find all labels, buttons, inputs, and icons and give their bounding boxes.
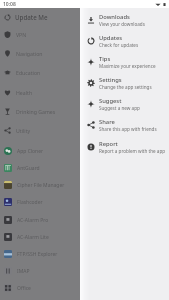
button[interactable]: Utility — [0, 122, 80, 139]
staticText: Share this app with friends — [99, 126, 157, 132]
button[interactable]: Health — [0, 84, 80, 101]
staticText: Update Me — [15, 13, 48, 21]
staticText: Tips — [99, 55, 111, 63]
button[interactable]: AC-Alarm Lite — [0, 229, 80, 245]
button[interactable]: Education — [0, 64, 80, 81]
staticText: Utility — [16, 127, 31, 134]
staticText: Downloads — [99, 13, 130, 21]
staticText: Drinking Games — [16, 108, 56, 115]
staticText: View your downloads — [99, 21, 145, 27]
staticText: Suggest — [99, 97, 122, 105]
button[interactable]: Downloads — [0, 9, 169, 30]
button[interactable]: App Cloner — [0, 143, 80, 159]
staticText: AC-Alarm Lite — [17, 234, 49, 241]
staticText: Health — [16, 89, 33, 96]
button[interactable]: Tips — [0, 51, 169, 72]
button[interactable]: IMAP — [0, 263, 80, 279]
staticText: Cipher File Manager — [17, 182, 65, 189]
staticText: Change the app settings — [99, 84, 152, 90]
staticText: Report a problem with the app — [99, 148, 166, 154]
button[interactable]: AntGuard — [0, 160, 80, 176]
button[interactable]: FTP/SSH Explorer — [0, 246, 80, 262]
staticText: Office — [17, 285, 31, 292]
staticText: Education — [16, 69, 41, 76]
staticText: AntGuard — [17, 165, 40, 172]
staticText: Suggest a new app — [99, 105, 140, 111]
button[interactable]: Flashcoder — [0, 194, 80, 210]
button[interactable]: Drinking Games — [0, 103, 80, 120]
staticText: Maximize your experience — [99, 63, 156, 69]
staticText: FTP/SSH Explorer — [17, 251, 58, 258]
staticText: AC-Alarm Pro — [17, 217, 49, 224]
staticText: Flashcoder — [17, 199, 43, 206]
staticText: 10:08 — [3, 1, 16, 8]
button[interactable]: Cipher File Manager — [0, 177, 80, 193]
button[interactable]: Update Me — [0, 9, 80, 25]
staticText: IMAP — [17, 268, 30, 275]
staticText: Check for updates — [99, 42, 139, 48]
button[interactable]: Report — [0, 136, 169, 157]
staticText: Navigation — [16, 50, 43, 57]
staticText: VPN — [16, 31, 27, 38]
staticText: App Cloner — [17, 148, 44, 155]
button[interactable]: Settings — [0, 72, 169, 93]
button[interactable]: AC-Alarm Pro — [0, 212, 80, 228]
staticText: Updates — [99, 34, 123, 42]
staticText: Share — [99, 118, 115, 126]
button[interactable]: Office — [0, 280, 80, 296]
button[interactable]: VPN — [0, 26, 80, 43]
button[interactable]: Navigation — [0, 45, 80, 62]
staticText: Settings — [99, 76, 122, 84]
button[interactable]: Suggest — [0, 93, 169, 114]
button[interactable]: Updates — [0, 30, 169, 51]
staticText: Report — [99, 140, 118, 148]
button[interactable]: Share — [0, 114, 169, 135]
